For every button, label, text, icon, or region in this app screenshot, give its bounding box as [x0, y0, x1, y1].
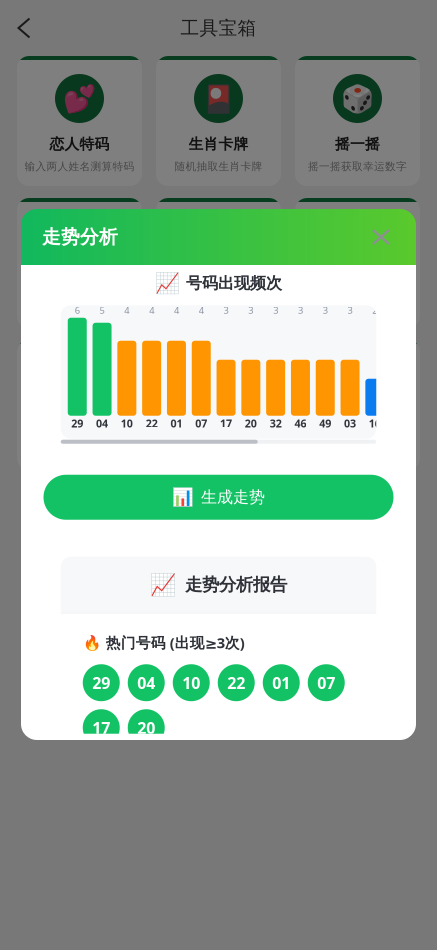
staticText: 生肖卡牌 [188, 135, 248, 153]
staticText: 精准选号 [49, 419, 109, 437]
button[interactable]: 🎴 [156, 56, 281, 186]
staticText: 16 [369, 416, 381, 430]
staticText: 随机抽取生肖卡牌 [174, 160, 262, 173]
staticText: 测算今日幸运号码 [174, 302, 262, 315]
staticText: 3 [224, 304, 229, 316]
staticText: 🎯 [63, 367, 96, 398]
button[interactable]: 📊 [43, 475, 393, 520]
staticText: 恋人特码 [49, 135, 109, 153]
staticText: 49 [319, 416, 331, 430]
staticText: 3 [348, 304, 353, 316]
staticText: 3 [323, 304, 328, 316]
staticText: 走势分析 [42, 225, 118, 248]
staticText: 10 [182, 672, 200, 693]
staticText: 6 [75, 304, 80, 316]
staticText: 🔥 [83, 634, 101, 651]
staticText: 🧮 [341, 225, 374, 256]
button[interactable]: 🎯 [17, 340, 142, 470]
staticText: 输入两人姓名测算特码 [24, 160, 134, 173]
staticText: 快速计算组合号码 [313, 302, 401, 315]
button[interactable]: 💡 [295, 340, 420, 470]
button[interactable]: Back [0, 4, 48, 52]
staticText: 5 [99, 304, 104, 316]
staticText: 🎲 [341, 83, 374, 114]
staticText: 32 [270, 416, 282, 430]
staticText: 4 [149, 304, 154, 316]
staticText: 📅 [202, 367, 235, 398]
button[interactable]: Close [363, 220, 399, 254]
staticText: 📈 [155, 272, 180, 295]
staticText: 热门号码 (出现≥3次) [106, 633, 245, 652]
button[interactable]: 🔮 [156, 198, 281, 328]
staticText: 📊 [63, 225, 96, 256]
staticText: 03 [344, 416, 356, 430]
staticText: 10 [121, 416, 133, 430]
staticText: 摇一摇 [335, 135, 380, 153]
staticText: 07 [195, 416, 207, 430]
staticText: 走势分析报告 [185, 574, 287, 595]
staticText: 17 [92, 717, 110, 738]
staticText: 号码出现频次 [186, 273, 282, 293]
button[interactable]: 📊 [17, 198, 142, 328]
staticText: 20 [137, 717, 155, 738]
staticText: 开奖日历 [188, 419, 248, 437]
staticText: 灵感推荐 [327, 419, 387, 437]
staticText: 3 [273, 304, 278, 316]
staticText: 4 [124, 304, 129, 316]
staticText: 17 [220, 416, 232, 430]
staticText: 29 [92, 672, 110, 693]
staticText: 💡 [341, 367, 374, 398]
staticText: 工具宝箱 [180, 16, 256, 39]
staticText: 3 [298, 304, 303, 316]
staticText: 20 [245, 416, 257, 430]
button[interactable]: 🎲 [295, 56, 420, 186]
staticText: 3 [248, 304, 253, 316]
staticText: 生成走势 [201, 487, 265, 507]
staticText: 22 [227, 672, 245, 693]
staticText: 04 [96, 416, 108, 430]
staticText: 01 [170, 416, 182, 430]
staticText: 4 [174, 304, 179, 316]
staticText: 46 [294, 416, 306, 430]
staticText: 幸运测算 [188, 277, 248, 295]
staticText: 01 [272, 672, 290, 693]
staticText: 4 [199, 304, 204, 316]
button[interactable]: 📅 [156, 340, 281, 470]
staticText: 📈 [150, 573, 177, 597]
button[interactable]: 🧮 [295, 198, 420, 328]
staticText: 04 [137, 672, 155, 693]
staticText: 📊 [172, 487, 194, 507]
staticText: 22 [146, 416, 158, 430]
staticText: 摇一摇获取幸运数字 [308, 160, 407, 173]
staticText: 2 [372, 304, 377, 316]
staticText: 分析号码出现频次 [35, 302, 123, 315]
staticText: 07 [317, 672, 335, 693]
staticText: 🎴 [202, 83, 235, 114]
staticText: 29 [71, 416, 83, 430]
staticText: 💕 [63, 83, 96, 114]
button[interactable]: 💕 [17, 56, 142, 186]
